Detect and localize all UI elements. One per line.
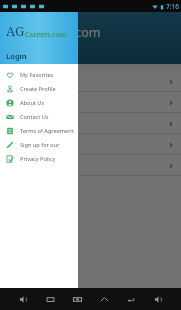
button[interactable] bbox=[0, 113, 181, 134]
button[interactable] bbox=[0, 71, 181, 92]
staticText: Create Profile bbox=[20, 85, 56, 93]
button[interactable] bbox=[0, 134, 181, 155]
staticText: Title, Keywords bbox=[10, 43, 56, 52]
button[interactable]: Terms of Agreement bbox=[0, 124, 78, 138]
staticText: Careers.com bbox=[25, 30, 67, 40]
button[interactable]: Contact Us bbox=[0, 110, 78, 124]
staticText: Privacy Policy bbox=[20, 155, 56, 163]
staticText: AGCareers.com bbox=[10, 24, 101, 41]
staticText: Sign up for our Newsletter bbox=[20, 141, 78, 149]
button[interactable]: About Us bbox=[0, 96, 78, 110]
button[interactable]: Login bbox=[6, 51, 27, 61]
staticText: Terms of Agreement bbox=[20, 127, 74, 135]
button[interactable]: Privacy Policy bbox=[0, 152, 78, 166]
staticText: My Favorites bbox=[20, 71, 54, 79]
button[interactable] bbox=[0, 155, 181, 176]
button[interactable]: Back bbox=[122, 288, 140, 310]
staticText: About Us bbox=[20, 99, 45, 107]
button[interactable]: Volume down bbox=[14, 288, 32, 310]
button[interactable]: Volume up bbox=[149, 288, 167, 310]
button[interactable]: Recents bbox=[41, 288, 59, 310]
staticText: 7:16 bbox=[166, 2, 179, 11]
button[interactable]: AG bbox=[0, 12, 78, 64]
button[interactable]: Home bbox=[95, 288, 113, 310]
button[interactable] bbox=[0, 92, 181, 113]
button[interactable]: Create Profile bbox=[0, 82, 78, 96]
staticText: AG bbox=[6, 22, 25, 40]
button[interactable]: My Favorites bbox=[0, 68, 78, 82]
staticText: Contact Us bbox=[20, 113, 49, 121]
button[interactable]: Sign up for our Newsletter bbox=[0, 138, 78, 152]
button[interactable]: Screenshot bbox=[68, 288, 86, 310]
staticText: Login bbox=[6, 51, 27, 61]
